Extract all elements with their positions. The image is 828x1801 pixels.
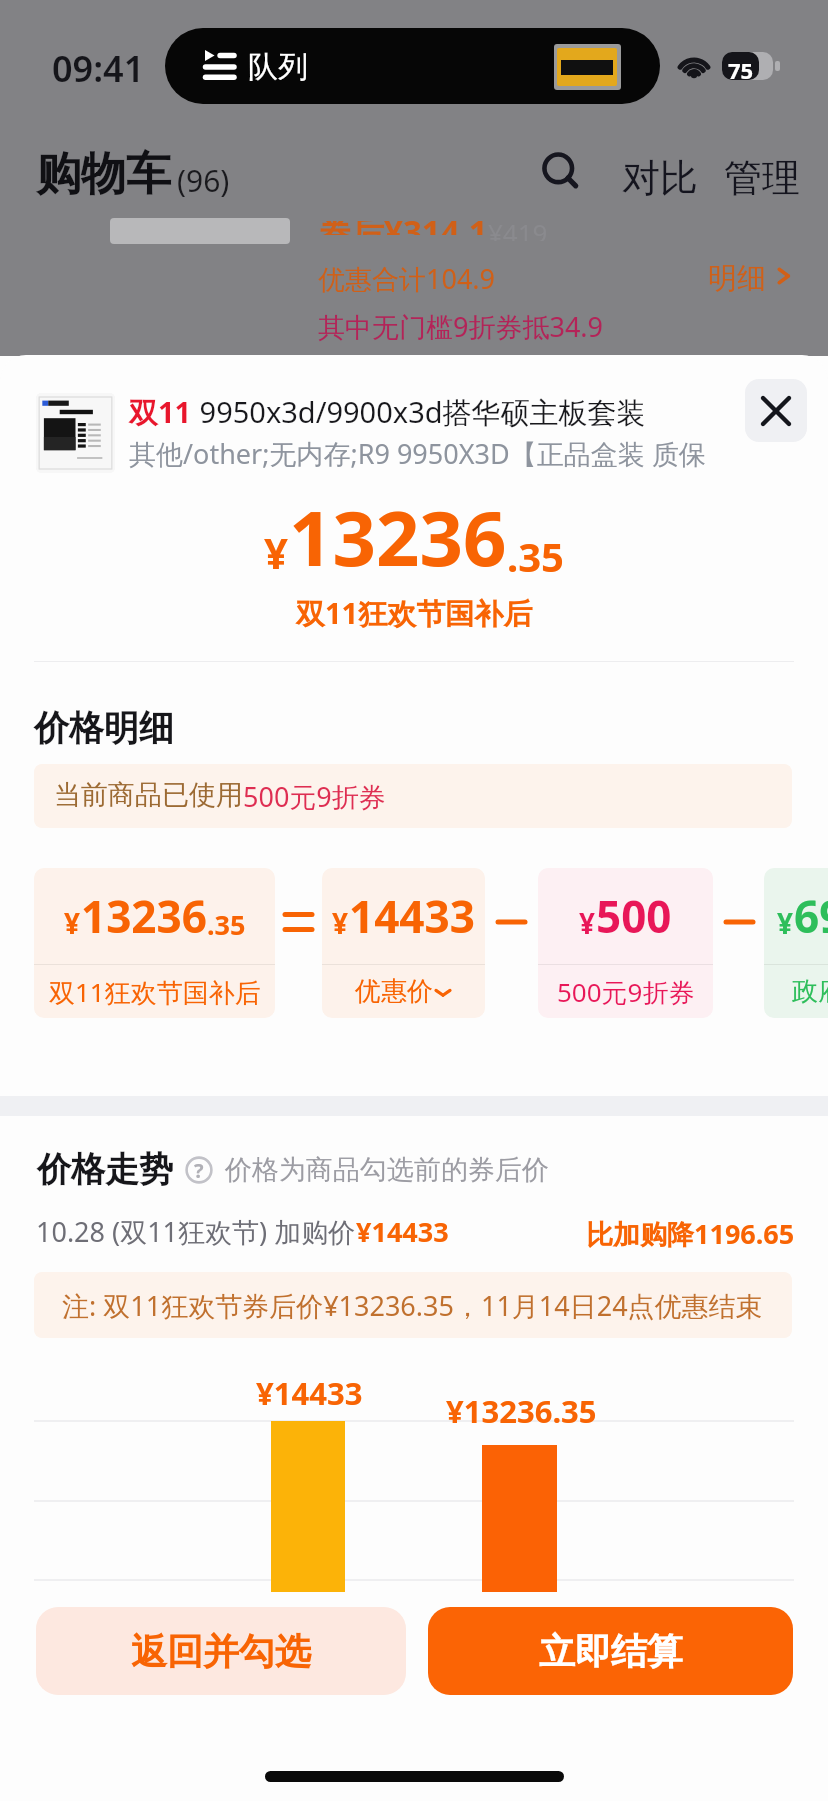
staticText: 价格明细 xyxy=(34,706,174,750)
staticText: 13236 xyxy=(289,485,507,589)
staticText: 其中无门槛9折券抵34.9 xyxy=(318,308,604,345)
staticText: 10.28 (双11狂欢节) 加购价 xyxy=(36,1213,356,1250)
staticText: 双11狂欢节国补后 xyxy=(49,974,261,1010)
staticText: 优惠价 xyxy=(355,975,433,1008)
staticText: 500 xyxy=(596,886,672,946)
staticText: .35 xyxy=(207,906,246,943)
staticText: ¥14433 xyxy=(356,1213,449,1250)
staticText: 500元9折券 xyxy=(243,778,386,815)
staticText: ¥ xyxy=(332,904,349,942)
staticText: ¥ xyxy=(264,524,289,581)
button[interactable]: 对比 xyxy=(616,148,704,208)
staticText: 优惠合计104.9 xyxy=(318,260,496,297)
staticText: 13236 xyxy=(81,886,207,946)
staticText: 队列 xyxy=(248,48,308,86)
button[interactable]: ¥ xyxy=(764,868,828,1018)
staticText: 明细 xyxy=(708,260,766,297)
button[interactable]: 返回并勾选 xyxy=(36,1607,406,1695)
button[interactable]: ¥ xyxy=(34,868,275,1018)
button[interactable]: Search xyxy=(532,143,590,201)
button[interactable]: ¥ xyxy=(322,868,485,1018)
staticText: 价格走势 xyxy=(37,1148,173,1191)
staticText: 政府补贴 xyxy=(792,975,828,1008)
staticText: 价格为商品勾选前的券后价 xyxy=(225,1153,549,1187)
staticText: 14433 xyxy=(349,886,475,946)
staticText: ¥14433 xyxy=(256,1372,363,1414)
button[interactable]: Close xyxy=(745,379,807,442)
staticText: 比加购降1196.65 xyxy=(586,1215,795,1252)
staticText: 9950x3d/9900x3d搭华硕主板套装 xyxy=(192,392,646,432)
button[interactable]: ¥ xyxy=(538,868,713,1018)
staticText: 双11狂欢节国补后 xyxy=(296,593,533,633)
staticText: 返回并勾选 xyxy=(131,1629,311,1674)
staticText: 券后¥314.1 xyxy=(318,221,488,235)
staticText: ¥419 xyxy=(488,221,548,241)
staticText: ¥13236.35 xyxy=(446,1390,597,1432)
staticText: 立即结算 xyxy=(539,1629,683,1674)
staticText: ¥ xyxy=(777,904,794,942)
staticText: 09:41 xyxy=(52,44,145,93)
button[interactable]: 管理 xyxy=(718,148,806,208)
staticText: 其他/other;无内存;R9 9950X3D【正品盒装 质保 xyxy=(129,435,706,472)
staticText: 697 xyxy=(794,886,828,946)
staticText: 75 xyxy=(728,55,754,85)
staticText: 500元9折券 xyxy=(557,974,695,1010)
staticText: .35 xyxy=(507,529,564,583)
staticText: 对比 xyxy=(622,154,698,202)
staticText: (96) xyxy=(177,160,230,201)
staticText: ¥ xyxy=(579,904,596,942)
staticText: ? xyxy=(194,1157,204,1184)
staticText: 当前商品已使用 xyxy=(54,778,243,812)
staticText: 购物车 xyxy=(36,146,171,203)
staticText: 注: 双11狂欢节券后价¥13236.35，11月14日24点优惠结束 xyxy=(62,1287,763,1324)
staticText: 管理 xyxy=(724,154,800,202)
button[interactable]: 立即结算 xyxy=(428,1607,793,1695)
staticText: 双11 xyxy=(129,392,192,432)
staticText: ¥ xyxy=(64,904,81,942)
